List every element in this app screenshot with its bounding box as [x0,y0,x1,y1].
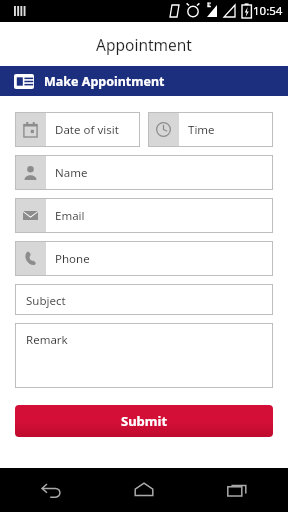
staticText: Subject [26,293,66,309]
button[interactable]: Make Appointment [0,66,288,96]
button[interactable]: Home [127,473,161,507]
staticText: Name [55,165,88,181]
button[interactable]: Phone [15,241,273,276]
button[interactable]: Recent apps [220,473,254,507]
staticText: Time [188,122,215,138]
staticText: Phone [55,251,90,267]
button[interactable]: Subject [15,284,273,315]
button[interactable]: Submit [15,405,273,437]
staticText: 10:54 [253,3,283,19]
staticText: Submit [121,412,168,430]
button[interactable]: Remark [15,323,273,388]
staticText: Remark [26,332,68,348]
button[interactable]: Email [15,198,273,233]
button[interactable]: Date of visit [15,112,140,147]
button[interactable]: Time [148,112,273,147]
button[interactable]: Name [15,155,273,190]
staticText: Date of visit [55,122,119,138]
staticText: Appointment [96,34,192,55]
staticText: Email [55,208,85,224]
staticText: Make Appointment [44,73,165,90]
button[interactable]: Back [34,473,68,507]
